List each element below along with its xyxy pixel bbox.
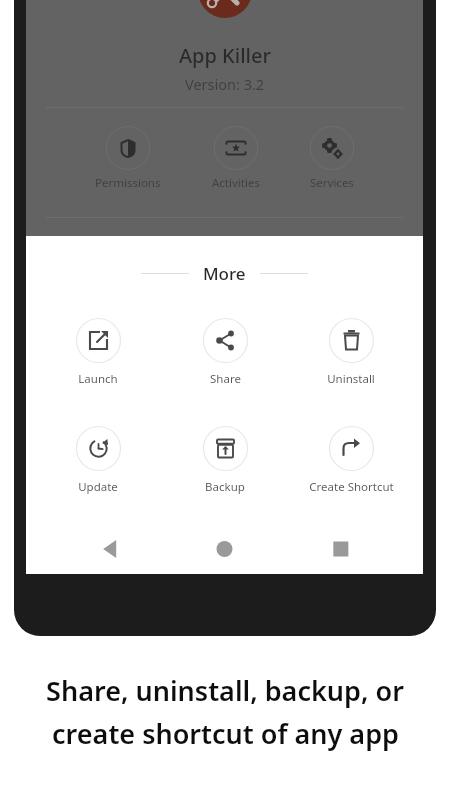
button[interactable]: Activities: [212, 126, 260, 191]
staticText: create shortcut of any app: [52, 715, 399, 752]
button[interactable]: Services: [310, 126, 354, 191]
staticText: Services: [310, 175, 354, 191]
button[interactable]: Uninstall app: [296, 318, 406, 387]
staticText: Create Shortcut: [309, 479, 394, 495]
button[interactable]: Create shortcut: [296, 426, 406, 495]
button[interactable]: Update app: [43, 426, 153, 495]
button[interactable]: Launch app: [43, 318, 153, 387]
staticText: Update: [78, 479, 118, 495]
staticText: Share, uninstall, backup, or: [46, 672, 404, 709]
staticText: Launch: [78, 371, 118, 387]
button[interactable]: Share app: [170, 318, 280, 387]
staticText: More: [203, 262, 246, 285]
staticText: Uninstall: [327, 371, 375, 387]
button[interactable]: Backup app: [170, 426, 280, 495]
staticText: Version: 3.2: [185, 74, 265, 94]
staticText: Permissions: [95, 175, 161, 191]
staticText: Activities: [212, 175, 260, 191]
staticText: App Killer: [179, 42, 271, 69]
staticText: Share: [210, 371, 241, 387]
button[interactable]: Permissions: [95, 126, 161, 191]
staticText: Backup: [205, 479, 245, 495]
